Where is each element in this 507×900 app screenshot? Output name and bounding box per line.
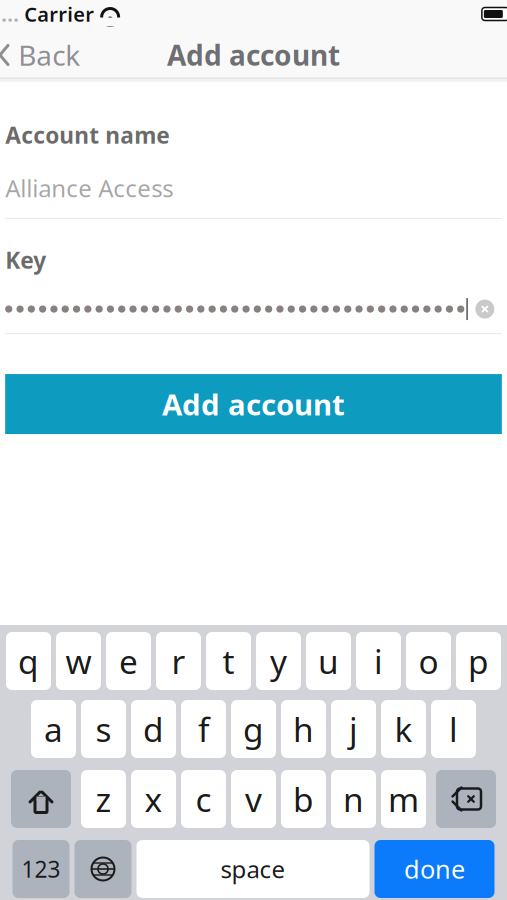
- staticText: Carrier: [19, 1, 94, 27]
- staticText: o: [418, 639, 438, 683]
- staticText: space: [220, 853, 285, 885]
- button[interactable]: k: [381, 700, 426, 758]
- staticText: n: [343, 777, 364, 821]
- staticText: i: [374, 639, 383, 683]
- staticText: z: [95, 777, 111, 821]
- button[interactable]: d: [131, 700, 176, 758]
- button[interactable]: m: [381, 770, 426, 828]
- button[interactable]: z: [81, 770, 126, 828]
- button[interactable]: l: [431, 700, 476, 758]
- staticText: p: [468, 639, 489, 683]
- staticText: done: [404, 852, 465, 886]
- staticText: b: [293, 777, 314, 821]
- staticText: w: [65, 639, 91, 683]
- button[interactable]: i: [356, 632, 401, 690]
- staticText: Account name: [5, 120, 170, 150]
- button[interactable]: g: [231, 700, 276, 758]
- staticText: a: [44, 707, 63, 751]
- button[interactable]: Shift: [11, 770, 71, 828]
- button[interactable]: n: [331, 770, 376, 828]
- button[interactable]: Add account: [5, 374, 502, 434]
- staticText: Add account: [167, 36, 340, 74]
- staticText: v: [245, 777, 262, 821]
- button[interactable]: c: [181, 770, 226, 828]
- staticText: Key: [5, 245, 46, 275]
- staticText: 123: [21, 854, 60, 884]
- staticText: f: [198, 707, 209, 751]
- button[interactable]: done: [374, 840, 494, 898]
- staticText: t: [222, 639, 234, 683]
- staticText: Alliance Access: [5, 172, 173, 204]
- staticText: c: [195, 777, 211, 821]
- button[interactable]: w: [56, 632, 101, 690]
- button[interactable]: a: [31, 700, 76, 758]
- button[interactable]: v: [231, 770, 276, 828]
- button[interactable]: x: [131, 770, 176, 828]
- staticText: ....: [0, 1, 19, 27]
- button[interactable]: r: [156, 632, 201, 690]
- button[interactable]: u: [306, 632, 351, 690]
- staticText: g: [243, 707, 264, 751]
- staticText: l: [449, 707, 458, 751]
- button[interactable]: b: [281, 770, 326, 828]
- staticText: r: [171, 639, 185, 683]
- button[interactable]: Clear text: [468, 295, 502, 323]
- button[interactable]: 123: [12, 840, 69, 898]
- button[interactable]: Back: [0, 28, 92, 82]
- staticText: j: [349, 707, 358, 751]
- button[interactable]: Delete: [436, 770, 496, 828]
- staticText: h: [293, 707, 314, 751]
- button[interactable]: h: [281, 700, 326, 758]
- button[interactable]: f: [181, 700, 226, 758]
- button[interactable]: Next keyboard: [74, 840, 131, 898]
- staticText: k: [394, 707, 412, 751]
- button[interactable]: e: [106, 632, 151, 690]
- button[interactable]: p: [456, 632, 501, 690]
- staticText: m: [388, 777, 419, 821]
- staticText: y: [270, 639, 287, 683]
- button[interactable]: o: [406, 632, 451, 690]
- staticText: d: [143, 707, 164, 751]
- button[interactable]: s: [81, 700, 126, 758]
- staticText: u: [318, 639, 339, 683]
- button[interactable]: q: [6, 632, 51, 690]
- button[interactable]: space: [136, 840, 369, 898]
- button[interactable]: y: [256, 632, 301, 690]
- staticText: Back: [18, 36, 80, 74]
- staticText: Add account: [162, 385, 345, 424]
- button[interactable]: j: [331, 700, 376, 758]
- button[interactable]: t: [206, 632, 251, 690]
- staticText: q: [18, 639, 39, 683]
- staticText: e: [119, 639, 138, 683]
- staticText: x: [144, 777, 162, 821]
- staticText: s: [95, 707, 111, 751]
